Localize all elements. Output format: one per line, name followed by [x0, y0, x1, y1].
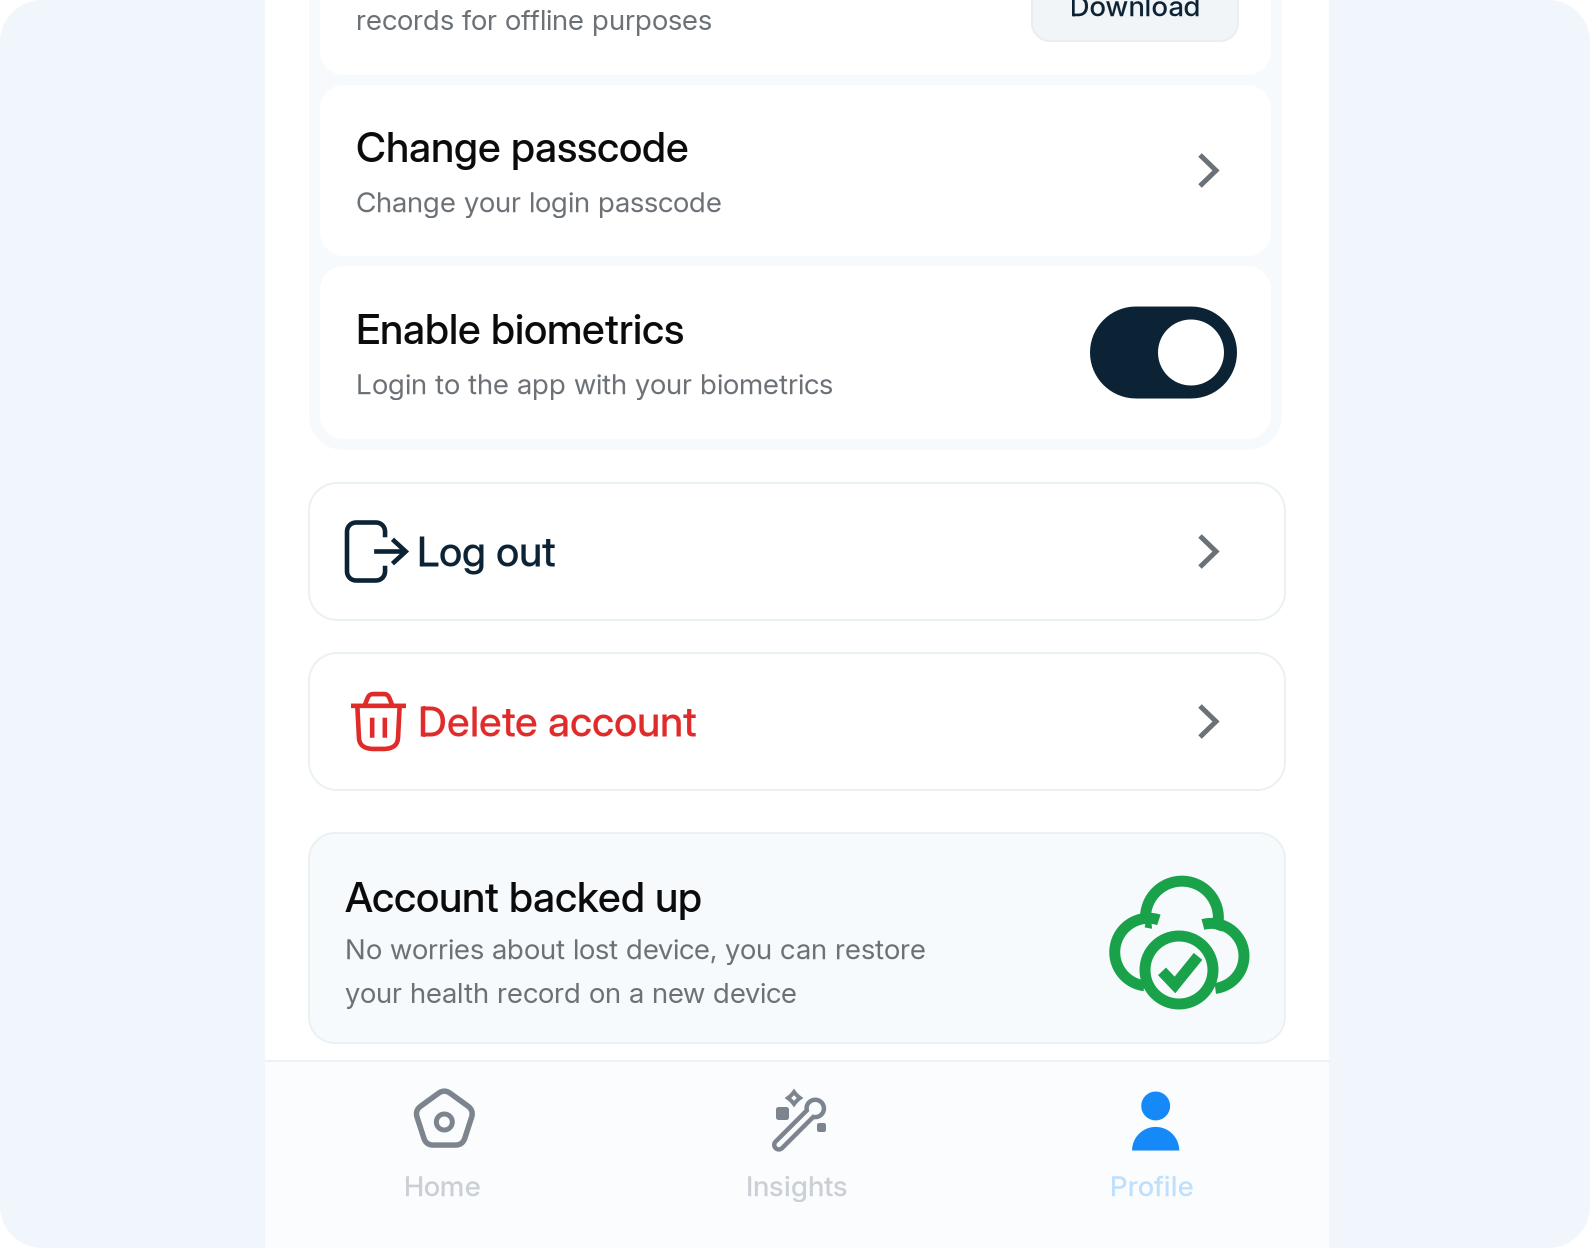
staticText: Delete account — [418, 696, 697, 746]
staticText: Profile — [1110, 1169, 1194, 1203]
button[interactable]: Change passcode — [320, 85, 1271, 256]
button[interactable]: Log out — [309, 483, 1285, 620]
staticText: Change your login passcode — [356, 185, 722, 219]
button[interactable]: Download — [1032, 0, 1238, 41]
staticText: Account backed up — [345, 872, 702, 922]
staticText: Enable biometrics — [356, 304, 684, 354]
staticText: Download — [1069, 0, 1200, 23]
staticText: records for offline purposes — [356, 3, 712, 37]
button[interactable]: Insights — [620, 1062, 974, 1248]
staticText: Log out — [417, 526, 556, 576]
staticText: No worries about lost device, you can re… — [345, 932, 926, 966]
button[interactable]: Delete account — [309, 653, 1285, 790]
staticText: Change passcode — [356, 122, 689, 172]
button[interactable]: Home — [265, 1062, 620, 1248]
staticText: Insights — [746, 1169, 848, 1203]
staticText: Home — [404, 1169, 481, 1203]
button[interactable]: Profile — [974, 1062, 1329, 1248]
staticText: Login to the app with your biometrics — [356, 367, 833, 401]
button[interactable]: Enable biometrics — [1090, 306, 1237, 398]
staticText: your health record on a new device — [345, 976, 797, 1010]
